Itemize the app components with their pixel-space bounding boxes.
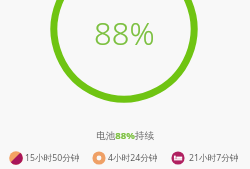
staticText: 21小时7分钟: [189, 152, 239, 164]
staticText: 电池88%持续: [96, 129, 155, 142]
button[interactable]: Awake time: [92, 151, 158, 165]
button[interactable]: Sleep time: [171, 151, 239, 165]
staticText: 88%: [94, 12, 155, 54]
staticText: 4小时24分钟: [108, 152, 158, 164]
button[interactable]: Screen on time: [9, 151, 80, 165]
staticText: 15小时50分钟: [25, 152, 80, 164]
